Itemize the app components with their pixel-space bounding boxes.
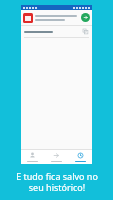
staticText: E tudo fica salvo no seu histórico! (11, 170, 103, 194)
button[interactable]: Copy (24, 26, 89, 37)
button[interactable]: Send (81, 13, 90, 22)
button[interactable]: Copy (82, 28, 89, 35)
button[interactable]: Send (23, 11, 90, 24)
button[interactable]: Send (44, 150, 68, 164)
button[interactable]: Profile (21, 150, 44, 164)
button[interactable]: History (68, 150, 92, 164)
